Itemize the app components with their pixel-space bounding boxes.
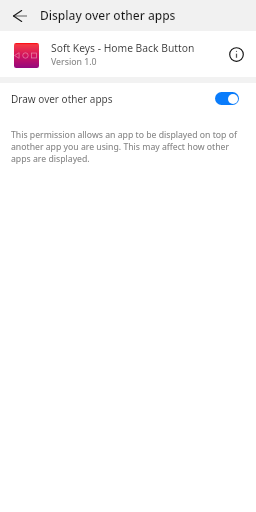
button[interactable]: App info xyxy=(224,42,248,66)
button[interactable]: Draw over other apps xyxy=(0,83,256,119)
staticText: Display over other apps xyxy=(40,7,176,23)
button[interactable]: Soft Keys - Home Back Button xyxy=(0,31,256,77)
staticText: Soft Keys - Home Back Button xyxy=(51,41,195,55)
button[interactable]: Draw over other apps, on xyxy=(215,92,239,105)
staticText: Draw over other apps xyxy=(11,92,113,106)
button[interactable]: Navigate up xyxy=(6,2,33,29)
staticText: This permission allows an app to be disp… xyxy=(11,129,242,165)
staticText: Version 1.0 xyxy=(51,56,97,68)
